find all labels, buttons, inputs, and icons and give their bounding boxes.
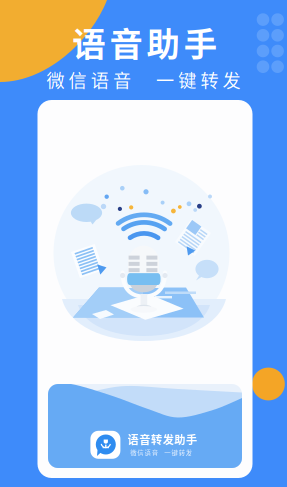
staticText: 信 — [137, 448, 143, 457]
staticText: 语 — [72, 18, 105, 66]
staticText: 发 — [186, 448, 192, 457]
staticText: 音 — [113, 66, 131, 93]
staticText: 音 — [152, 448, 158, 457]
staticText: 键 — [171, 448, 177, 457]
staticText: 助 — [147, 18, 180, 66]
staticText: 发 — [223, 66, 241, 93]
staticText: 手 — [184, 18, 217, 66]
staticText: 转 — [151, 431, 162, 447]
staticText: 微 — [46, 66, 64, 93]
staticText: 音 — [139, 431, 150, 447]
staticText: 一 — [164, 448, 170, 457]
staticText: 键 — [178, 66, 196, 93]
staticText: 信 — [69, 66, 87, 93]
staticText: 语 — [91, 66, 109, 93]
button[interactable]: 语 — [48, 384, 242, 468]
staticText: 一 — [156, 66, 174, 93]
staticText: 语 — [145, 448, 151, 457]
staticText: 转 — [179, 448, 185, 457]
staticText: 音 — [109, 18, 142, 66]
staticText: 发 — [163, 431, 174, 447]
staticText: 微 — [130, 448, 136, 457]
staticText: 语 — [127, 431, 138, 447]
staticText: 手 — [186, 431, 197, 447]
staticText: 助 — [174, 431, 185, 447]
staticText: 转 — [200, 66, 218, 93]
